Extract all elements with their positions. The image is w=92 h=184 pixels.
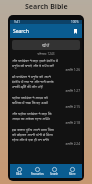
staticText: बाटिका में रखा कि वह उसमें — [12, 100, 48, 105]
staticText: उत्पत्ति 2:18 — [12, 121, 80, 125]
staticText: स्वरूप में रचा नर और नारी करके — [12, 79, 54, 84]
button[interactable]: और परमेश्वर ने कहा हमारे स्वरूप में — [10, 56, 82, 72]
button[interactable]: और यहोवा परमेश्वर ने कहा कि — [10, 109, 82, 125]
staticText: खोजें — [42, 43, 50, 48]
staticText: More — [69, 172, 76, 176]
button[interactable]: इस कारण पुरुष अपने माता पिता — [10, 125, 82, 146]
staticText: 100% — [71, 20, 79, 24]
staticText: 9:41 — [14, 20, 20, 24]
staticText: Search — [13, 28, 29, 35]
staticText: Bible — [16, 172, 23, 176]
staticText: सो परमेश्वर ने मनुष्य को अपने — [12, 74, 51, 79]
staticText: रहेगा और वे एक ही तन बनेंगे — [12, 137, 49, 142]
staticText: Search Bible — [25, 2, 68, 12]
staticText: उनकी सृष्टि की और उन्हें — [12, 84, 43, 89]
staticText: Search — [50, 172, 59, 176]
staticText: परिणाम: 1243 — [10, 52, 82, 56]
staticText: उत्पत्ति 1:27 — [12, 89, 80, 93]
staticText: उत्पत्ति 2:15 — [12, 105, 80, 109]
staticText: इस कारण पुरुष अपने माता पिता — [12, 127, 54, 132]
button[interactable]: Bookmarks — [70, 26, 80, 36]
staticText: यहोवा परमेश्वर ने आदम को — [12, 95, 48, 100]
button[interactable]: खोजें — [12, 40, 80, 50]
button[interactable]: Search — [46, 164, 63, 178]
staticText: उत्पत्ति 2:24 — [12, 142, 80, 146]
button[interactable]: More — [64, 164, 81, 178]
staticText: उत्पत्ति 1:26 — [12, 68, 80, 72]
staticText: आदम का अकेला रहना अच्छा — [12, 116, 50, 121]
button[interactable]: Favourites — [29, 164, 46, 178]
staticText: Favourites — [31, 172, 44, 176]
staticText: और यहोवा परमेश्वर ने कहा कि — [12, 111, 52, 116]
button[interactable]: यहोवा परमेश्वर ने आदम को — [10, 93, 82, 109]
button[interactable]: सो परमेश्वर ने मनुष्य को अपने — [10, 72, 82, 93]
staticText: और परमेश्वर ने कहा हमारे स्वरूप में — [12, 58, 58, 63]
staticText: को छोड़कर अपनी पत्नी से मिला — [12, 132, 53, 137]
button[interactable]: Bible — [11, 164, 28, 178]
staticText: मनुष्य को बनाएँ और वे राज्य करें — [12, 63, 54, 68]
